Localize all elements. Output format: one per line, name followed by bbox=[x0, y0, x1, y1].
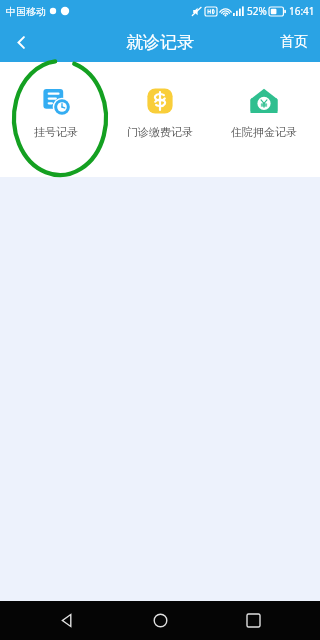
staticText: 住院押金记录 bbox=[231, 125, 297, 139]
staticText: 首页 bbox=[280, 33, 308, 51]
staticText: 16:41 bbox=[289, 4, 315, 18]
staticText: 就诊记录 bbox=[126, 32, 194, 53]
button[interactable]: 挂号记录 bbox=[8, 82, 104, 143]
button[interactable]: Home bbox=[134, 601, 186, 640]
button[interactable]: 住院押金记录 bbox=[216, 82, 312, 143]
staticText: 中国移动 bbox=[6, 5, 46, 18]
staticText: 52% bbox=[247, 4, 267, 18]
button[interactable]: 首页 bbox=[268, 22, 320, 62]
staticText: 门诊缴费记录 bbox=[127, 125, 193, 139]
staticText: 挂号记录 bbox=[34, 125, 78, 139]
button[interactable]: Back bbox=[0, 22, 42, 62]
button[interactable]: 门诊缴费记录 bbox=[112, 82, 208, 143]
button[interactable]: Recent apps bbox=[227, 601, 279, 640]
button[interactable]: Back bbox=[41, 601, 93, 640]
